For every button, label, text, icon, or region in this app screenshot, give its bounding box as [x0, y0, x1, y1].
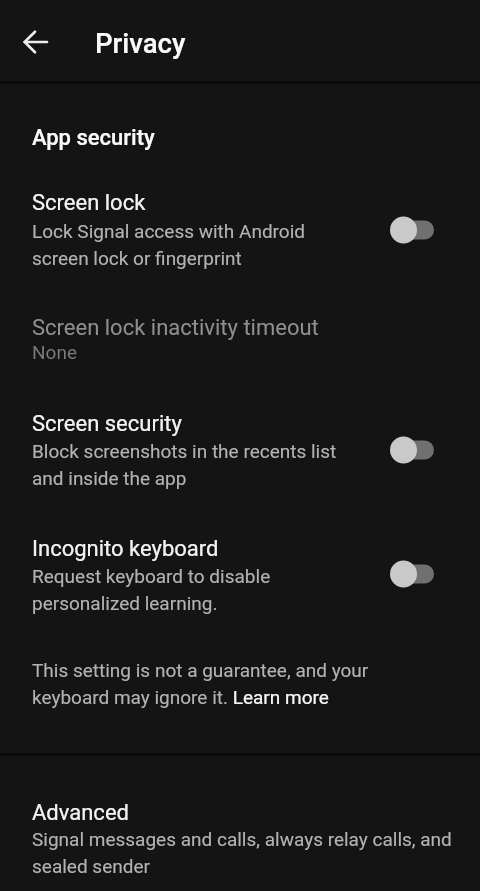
button[interactable] — [0, 524, 480, 626]
staticText: Privacy — [95, 27, 186, 59]
button[interactable] — [0, 401, 480, 501]
staticText: This setting is not a guarantee, and you… — [32, 659, 369, 681]
staticText: Advanced — [32, 800, 129, 826]
staticText: Incognito keyboard — [32, 536, 219, 562]
staticText: Block screenshots in the recents list — [32, 440, 337, 462]
staticText: sealed sender — [32, 855, 150, 877]
staticText: Request keyboard to disable — [32, 565, 271, 587]
staticText: Signal messages and calls, always relay … — [32, 828, 452, 850]
staticText: screen lock or fingerprint — [32, 247, 242, 269]
button[interactable] — [0, 180, 480, 280]
staticText: Lock Signal access with Android — [32, 220, 306, 242]
staticText: Screen security — [32, 411, 182, 437]
staticText: and inside the app — [32, 467, 187, 489]
button[interactable] — [0, 788, 480, 891]
staticText: Screen lock — [32, 190, 146, 216]
button[interactable] — [0, 304, 480, 370]
staticText: None — [32, 341, 77, 363]
staticText: App security — [32, 125, 155, 151]
staticText: personalized learning. — [32, 592, 218, 614]
button[interactable] — [12, 18, 60, 66]
staticText: Screen lock inactivity timeout — [32, 315, 319, 341]
